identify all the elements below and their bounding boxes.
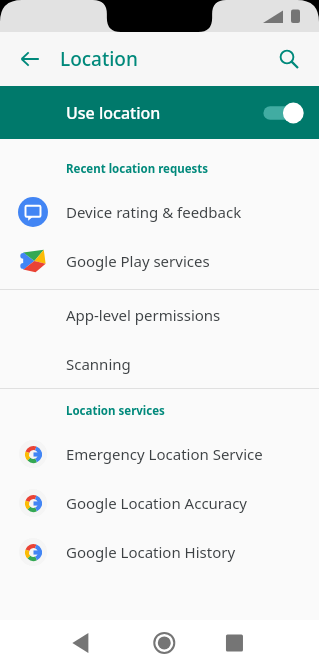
- staticText: Google Location History: [66, 542, 236, 562]
- button[interactable]: Scanning: [0, 339, 319, 388]
- button[interactable]: Google Location History: [0, 527, 319, 576]
- button[interactable]: Emergency Location Service: [0, 429, 319, 478]
- staticText: Recent location requests: [66, 161, 209, 177]
- button[interactable]: Use location: [0, 86, 319, 139]
- button[interactable]: Search: [269, 39, 309, 79]
- button[interactable]: Back: [69, 620, 129, 664]
- staticText: Device rating & feedback: [66, 202, 242, 222]
- staticText: Google Location Accuracy: [66, 493, 248, 513]
- button[interactable]: Recent apps: [189, 620, 249, 664]
- button[interactable]: Google Play services: [0, 236, 319, 285]
- button[interactable]: App-level permissions: [0, 290, 319, 339]
- staticText: Location services: [66, 403, 165, 419]
- staticText: App-level permissions: [66, 305, 221, 325]
- staticText: Location: [60, 46, 138, 72]
- button[interactable]: Back: [10, 39, 50, 79]
- staticText: Scanning: [66, 354, 131, 374]
- button[interactable]: Google Location Accuracy: [0, 478, 319, 527]
- staticText: Emergency Location Service: [66, 444, 263, 464]
- staticText: Use location: [66, 102, 161, 124]
- button[interactable]: Device rating & feedback: [0, 187, 319, 236]
- staticText: Google Play services: [66, 251, 210, 271]
- button[interactable]: Home: [129, 620, 189, 664]
- button[interactable]: Use location toggle: [259, 100, 303, 126]
